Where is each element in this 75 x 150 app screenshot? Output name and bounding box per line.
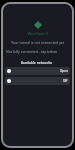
staticText: Available networks	[21, 60, 72, 65]
staticText: Your tunnel is not connected yet	[3, 40, 72, 45]
button[interactable]: Off	[5, 77, 70, 85]
staticText: Open	[60, 69, 68, 73]
staticText: Not fully connected - tap below	[6, 49, 72, 54]
staticText: WireGuard	[3, 31, 72, 36]
button[interactable]: Open	[5, 67, 70, 75]
staticText: Off	[63, 79, 68, 83]
